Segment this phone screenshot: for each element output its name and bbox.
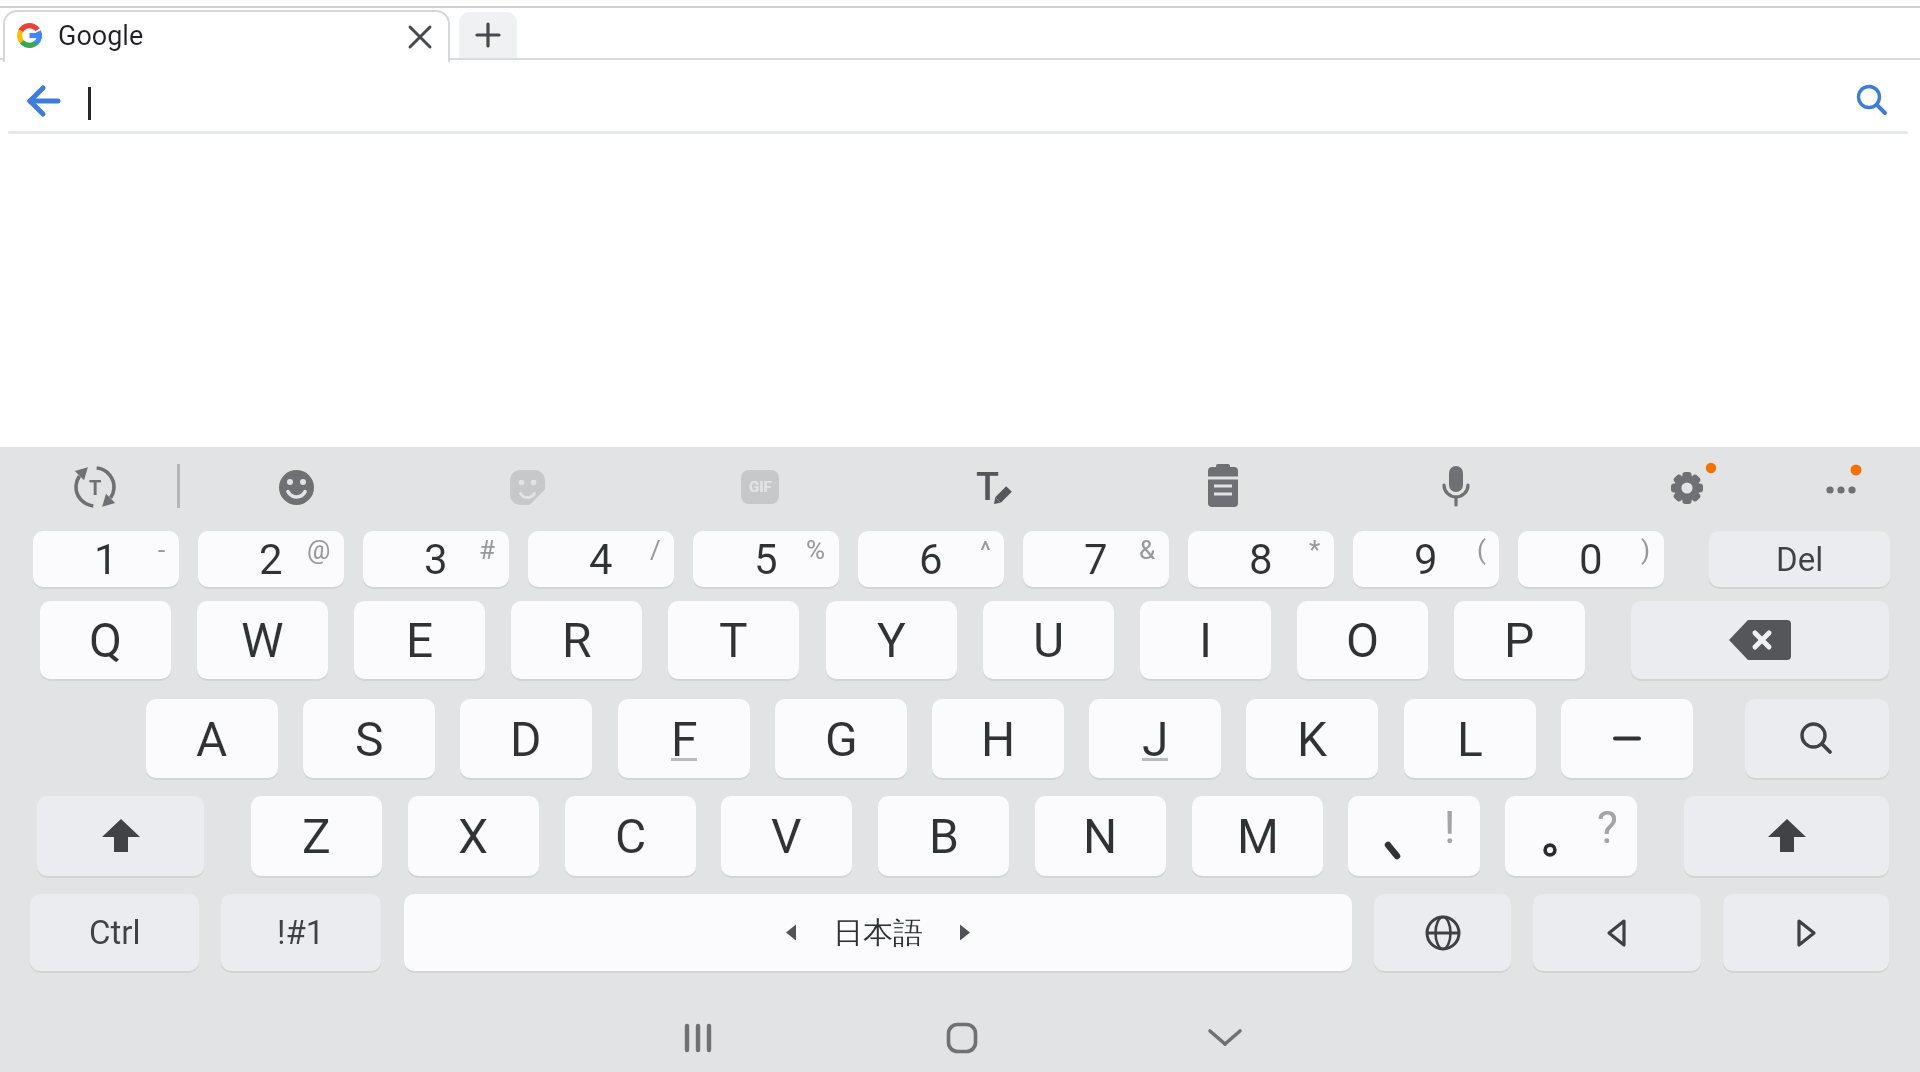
staticText: 5 [754,535,778,584]
button[interactable]: D [460,699,592,778]
button[interactable]: N [1035,796,1166,876]
button[interactable]: F [618,699,750,778]
staticText: 3 [424,535,448,584]
button[interactable]: 5 [693,531,839,587]
button[interactable] [1631,601,1889,679]
button[interactable] [29,86,59,116]
button[interactable]: 1 [33,531,179,587]
button[interactable] [936,1012,988,1064]
staticText: 8 [1249,535,1273,584]
button[interactable]: L [1404,699,1536,778]
button[interactable]: T [68,460,122,514]
button[interactable]: 4 [528,531,674,587]
staticText: U [1033,612,1065,668]
staticText: O [1346,612,1380,668]
button[interactable]: U [983,601,1114,679]
staticText: Y [877,612,906,668]
button[interactable]: 8 [1188,531,1334,587]
button[interactable]: R [511,601,642,679]
staticText: ( [1477,535,1486,565]
button[interactable] [1206,465,1240,509]
button[interactable]: W [197,601,328,679]
button[interactable]: B [878,796,1009,876]
button[interactable] [278,469,315,506]
button[interactable]: Q [40,601,171,679]
button[interactable] [672,1012,724,1064]
staticText: ? [1597,802,1618,854]
staticText: A [196,711,228,767]
button[interactable]: 0 [1518,531,1664,587]
button[interactable]: !#1 [221,894,381,971]
button[interactable] [1745,699,1889,778]
button[interactable] [1437,463,1475,511]
button[interactable]: 9 [1353,531,1499,587]
button[interactable]: ? [1505,796,1637,876]
button[interactable] [1854,82,1890,118]
button[interactable]: Ctrl [30,894,199,971]
button[interactable] [1684,796,1889,876]
staticText: 6 [919,535,943,584]
staticText: Q [89,612,123,668]
button[interactable]: T [966,460,1020,514]
button[interactable]: GIF [741,470,779,504]
button[interactable] [1533,894,1701,971]
button[interactable]: V [721,796,852,876]
button[interactable]: K [1246,699,1378,778]
button[interactable]: I [1140,601,1271,679]
button[interactable] [1818,466,1864,512]
button[interactable] [37,796,204,876]
staticText: T [976,465,1000,510]
button[interactable] [1664,465,1710,511]
staticText: ! [1444,802,1456,854]
button[interactable]: J [1089,699,1221,778]
staticText: M [1237,808,1279,864]
button[interactable]: 7 [1023,531,1169,587]
button[interactable]: O [1297,601,1428,679]
staticText: & [1139,535,1156,565]
button[interactable]: X [408,796,539,876]
button[interactable]: 6 [858,531,1004,587]
staticText: V [771,808,802,864]
button[interactable]: C [565,796,696,876]
staticText: 7 [1084,535,1108,584]
button[interactable] [1561,699,1693,778]
staticText: - [158,535,166,565]
button[interactable]: S [303,699,435,778]
staticText: * [1309,535,1321,565]
staticText: J [1142,711,1169,767]
button[interactable]: E [354,601,485,679]
staticText: Z [302,808,331,864]
button[interactable]: 2 [198,531,344,587]
button[interactable]: T [668,601,799,679]
button[interactable] [1374,894,1511,971]
button[interactable]: Del [1709,531,1890,587]
button[interactable] [405,22,435,52]
staticText: L [1457,711,1483,767]
button[interactable]: P [1454,601,1585,679]
button[interactable] [3,10,450,62]
button[interactable]: ! [1348,796,1480,876]
staticText: K [1297,711,1328,767]
staticText: G [825,711,858,767]
button[interactable]: M [1192,796,1323,876]
staticText: / [650,535,661,565]
staticText: T [89,476,102,499]
button[interactable]: H [932,699,1064,778]
button[interactable] [1199,1012,1251,1064]
button[interactable]: Z [251,796,382,876]
staticText: E [406,612,434,668]
staticText: W [241,612,284,668]
staticText: ^ [980,535,991,565]
button[interactable]: 3 [363,531,509,587]
button[interactable] [509,469,546,506]
button[interactable] [1723,894,1889,971]
button[interactable]: Y [826,601,957,679]
button[interactable]: A [146,699,278,778]
button[interactable] [459,12,517,58]
staticText: 1 [94,535,118,584]
staticText: GIF [749,478,772,496]
staticText: 9 [1414,535,1438,584]
button[interactable]: G [775,699,907,778]
button[interactable]: 日本語 [404,894,1352,971]
staticText: % [806,535,826,565]
